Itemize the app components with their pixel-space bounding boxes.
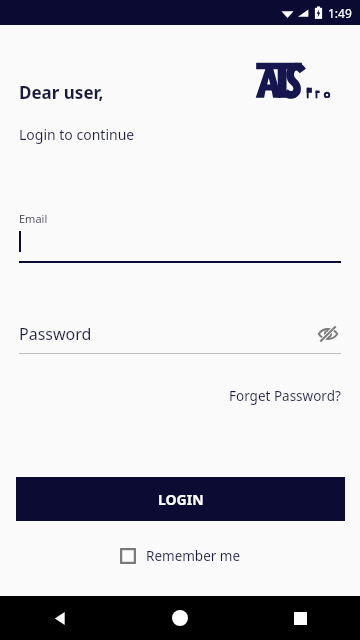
button[interactable]: Recent apps (240, 596, 360, 640)
staticText: Login to continue (19, 125, 135, 144)
staticText: 1:49 (328, 5, 352, 21)
button[interactable]: Remember me (116, 543, 245, 569)
staticText: Dear user, (19, 81, 104, 104)
button[interactable]: LOGIN (16, 477, 345, 521)
button[interactable]: Forget Password? (225, 383, 345, 409)
button[interactable]: Password (19, 321, 341, 354)
button[interactable]: Email (19, 211, 341, 263)
staticText: LOGIN (158, 490, 204, 509)
staticText: Password (19, 323, 92, 345)
staticText: Forget Password? (229, 387, 341, 405)
button[interactable]: Home (120, 596, 240, 640)
staticText: Remember me (146, 547, 241, 565)
button[interactable]: Show password (315, 321, 341, 347)
staticText: Email (19, 211, 48, 226)
button[interactable]: Back (0, 596, 120, 640)
